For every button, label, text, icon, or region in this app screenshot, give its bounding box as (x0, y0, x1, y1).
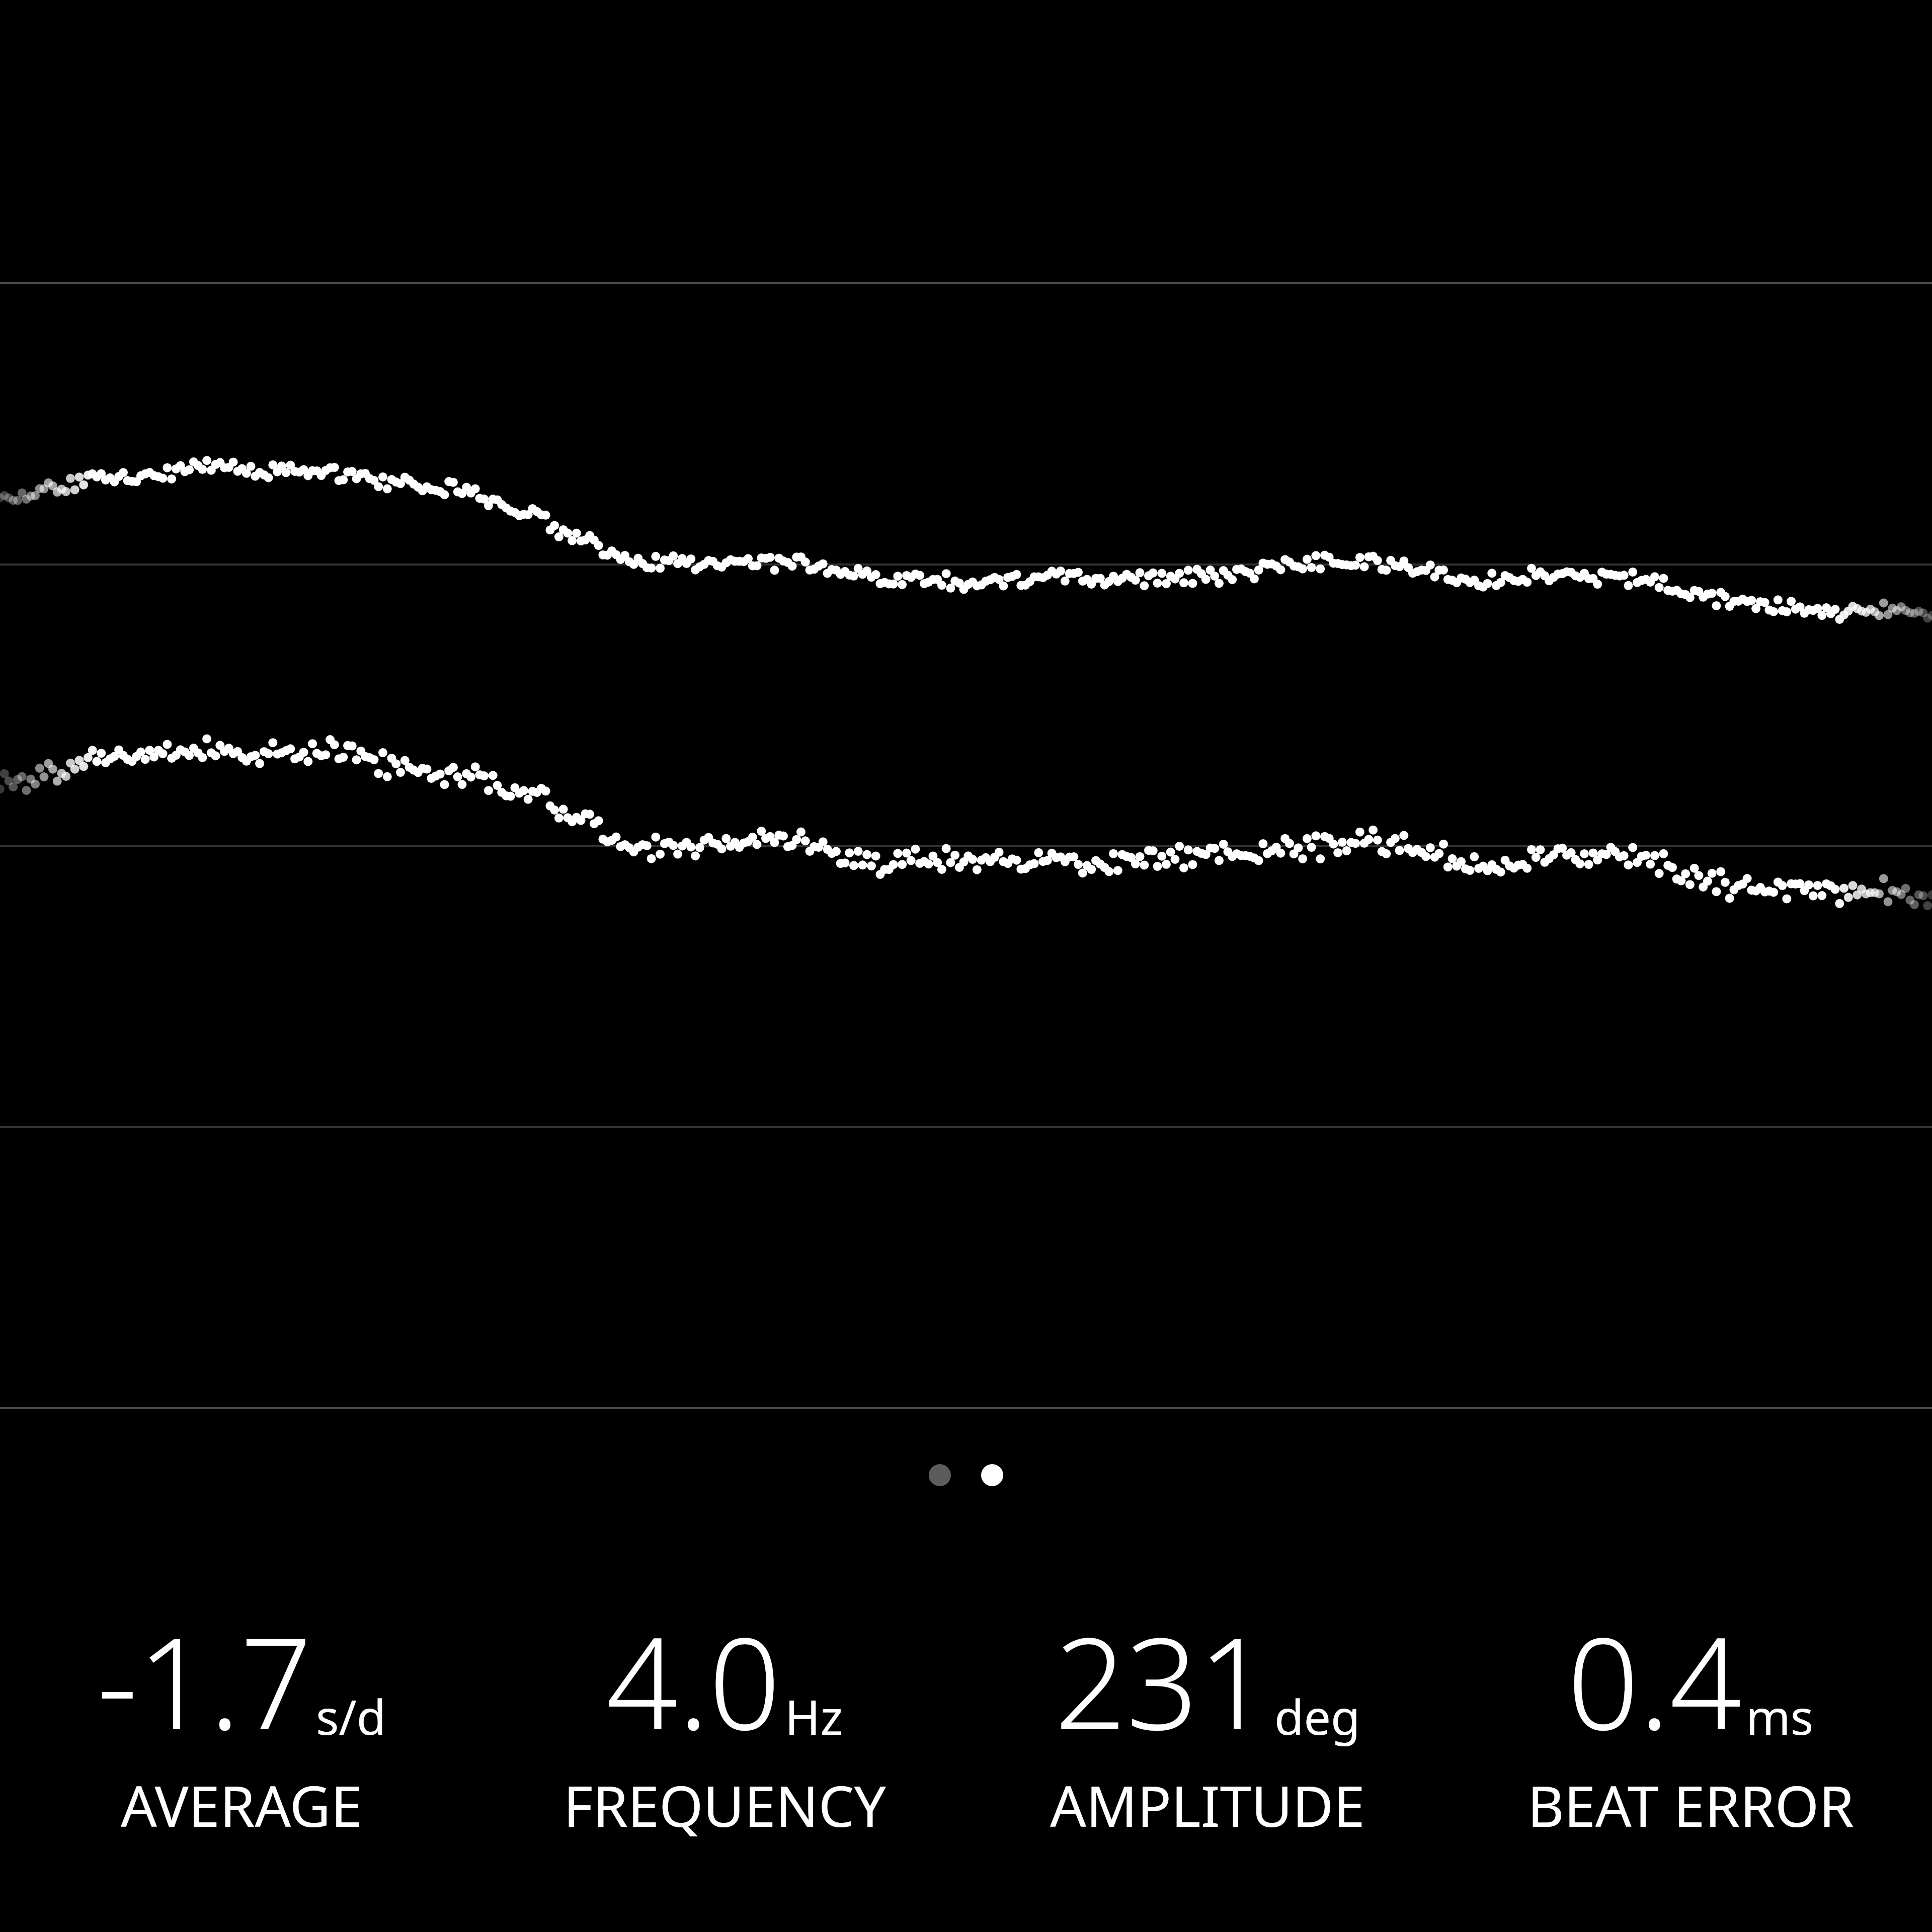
staticText: deg (1274, 1683, 1360, 1748)
staticText: 231 (1055, 1595, 1270, 1766)
button[interactable]: 0.4 (1449, 1595, 1932, 1843)
staticText: AMPLITUDE (1050, 1766, 1365, 1843)
button[interactable]: Page 1 (929, 1464, 951, 1486)
staticText: BEAT ERROR (1527, 1766, 1854, 1843)
staticText: Hz (785, 1683, 843, 1748)
staticText: 0.4 (1567, 1595, 1742, 1766)
staticText: AVERAGE (121, 1766, 362, 1843)
staticText: 4.0 (606, 1595, 781, 1766)
button[interactable]: -1.7 (0, 1595, 483, 1843)
button[interactable]: 231 (966, 1595, 1449, 1843)
button[interactable]: 4.0 (483, 1595, 966, 1843)
staticText: -1.7 (97, 1595, 312, 1766)
staticText: FREQUENCY (563, 1766, 886, 1843)
staticText: ms (1746, 1683, 1814, 1748)
staticText: s/d (316, 1683, 386, 1748)
button[interactable]: Page 2 (981, 1464, 1003, 1486)
